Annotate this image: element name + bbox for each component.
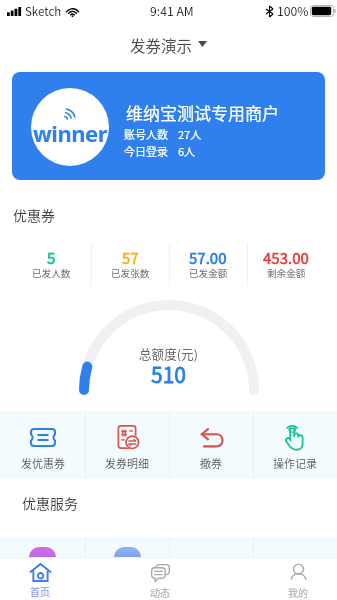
staticText: Sketch (25, 3, 62, 20)
button[interactable]: 453.00 (247, 244, 325, 286)
staticText: 首页 (30, 584, 50, 598)
staticText: 我的 (288, 585, 308, 599)
button[interactable]: 我的 (270, 563, 326, 599)
staticText: 账号人数 (124, 126, 168, 142)
staticText: 已发金额 (189, 266, 228, 280)
button[interactable]: 撤券 (169, 411, 253, 479)
button[interactable]: 发优惠券 (0, 411, 85, 479)
staticText: 发券明细 (105, 455, 149, 471)
staticText: 优惠服务 (22, 493, 78, 513)
staticText: 总额度(元) (139, 344, 198, 362)
button[interactable]: 首页 (12, 563, 68, 598)
staticText: winner (32, 118, 108, 148)
button[interactable]: 57 (91, 244, 169, 286)
staticText: 今日登录 (124, 143, 168, 159)
staticText: 6人 (178, 143, 196, 159)
staticText: 撤券 (200, 455, 222, 471)
staticText: 剩余金额 (267, 266, 306, 280)
staticText: 57 (122, 247, 139, 269)
staticText: 已发张数 (111, 266, 150, 280)
button[interactable]: winner (12, 72, 325, 180)
button[interactable]: 5 (12, 244, 91, 286)
staticText: 发券演示 (130, 34, 193, 54)
button[interactable]: 发券演示 (120, 28, 217, 60)
staticText: 发优惠券 (21, 455, 65, 471)
staticText: 100% (277, 2, 309, 20)
staticText: 510 (151, 359, 186, 389)
staticText: 优惠券 (13, 205, 55, 225)
button[interactable] (0, 537, 85, 557)
staticText: 已发人数 (32, 266, 71, 280)
button[interactable] (85, 537, 169, 557)
staticText: 57.00 (189, 247, 227, 269)
staticText: 5 (47, 247, 56, 269)
staticText: 453.00 (263, 247, 309, 269)
button[interactable]: 动态 (132, 563, 188, 599)
button[interactable]: 操作记录 (253, 411, 337, 479)
staticText: 维纳宝测试专用商户 (126, 100, 279, 125)
button[interactable]: 发券明细 (85, 411, 169, 479)
staticText: 27人 (178, 126, 202, 142)
staticText: 9:41 AM (150, 2, 194, 20)
button[interactable]: 57.00 (169, 244, 247, 286)
staticText: 动态 (150, 585, 170, 599)
staticText: 操作记录 (273, 455, 317, 471)
